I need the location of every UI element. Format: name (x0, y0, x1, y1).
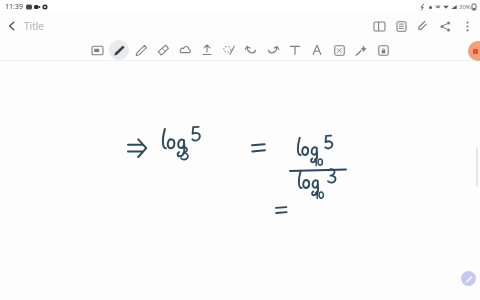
button[interactable]: Notes list (391, 16, 411, 36)
button[interactable]: Eraser (153, 40, 173, 60)
button[interactable]: Text (285, 40, 305, 60)
button[interactable]: More options (457, 16, 477, 36)
button[interactable]: Lock (373, 40, 393, 60)
button[interactable]: Page layout (369, 16, 389, 36)
button[interactable]: Insert image (87, 40, 107, 60)
button[interactable]: Lasso (219, 40, 239, 60)
staticText: 30% (459, 3, 471, 11)
button[interactable]: Shapes (175, 40, 195, 60)
button[interactable]: Insert object (329, 40, 349, 60)
button[interactable]: Highlighter (131, 40, 151, 60)
button[interactable]: Share (435, 16, 455, 36)
button[interactable]: Attach (413, 16, 433, 36)
button[interactable]: Font (307, 40, 327, 60)
staticText: 11:39 (5, 2, 23, 12)
button[interactable]: Select (197, 40, 217, 60)
button[interactable]: Redo (263, 40, 283, 60)
button[interactable]: Pen (109, 40, 129, 60)
button[interactable]: Edit with pen (461, 271, 476, 286)
staticText: Title (24, 19, 44, 33)
button[interactable]: Profile (468, 41, 480, 61)
button[interactable]: Undo (241, 40, 261, 60)
button[interactable]: Magic (351, 40, 371, 60)
button[interactable]: Back (0, 14, 24, 38)
